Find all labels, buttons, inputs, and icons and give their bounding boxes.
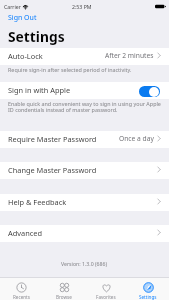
staticText: Help & Feedback <box>8 197 67 207</box>
button[interactable]: Settings <box>127 278 169 300</box>
button[interactable]: Help & Feedback <box>0 194 169 211</box>
staticText: Settings <box>8 27 65 46</box>
button[interactable]: Favorites <box>85 278 127 300</box>
staticText: Sign Out <box>8 13 37 23</box>
staticText: Advanced <box>8 228 42 238</box>
button[interactable]: Auto-Lock <box>0 48 169 65</box>
staticText: Sign in with Apple <box>8 85 71 95</box>
staticText: Carrier <box>4 3 21 10</box>
staticText: Change Master Password <box>8 165 97 175</box>
staticText: Enable quick and convenient way to sign … <box>8 100 164 114</box>
staticText: 2:53 PM <box>72 3 92 10</box>
button[interactable]: Advanced <box>0 225 169 242</box>
staticText: After 2 minutes <box>105 51 154 60</box>
button[interactable]: Sign in with Apple <box>0 82 169 99</box>
staticText: Recents <box>13 294 30 300</box>
button[interactable]: Change Master Password <box>0 162 169 179</box>
staticText: Browse <box>56 294 72 300</box>
staticText: Favorites <box>96 294 116 300</box>
staticText: Require sign-in after selected period of… <box>8 66 132 73</box>
button[interactable]: Sign Out <box>0 13 45 23</box>
button[interactable]: Require Master Password <box>0 131 169 148</box>
button[interactable]: Recents <box>0 278 43 300</box>
staticText: Settings <box>139 294 157 300</box>
button[interactable]: Browse <box>43 278 85 300</box>
button[interactable]: Sign in with Apple toggle <box>139 86 160 97</box>
staticText: Auto-Lock <box>8 51 43 61</box>
staticText: Version: 1.3.0 (686) <box>61 260 108 267</box>
staticText: Require Master Password <box>8 134 97 144</box>
staticText: Once a day <box>119 134 154 143</box>
